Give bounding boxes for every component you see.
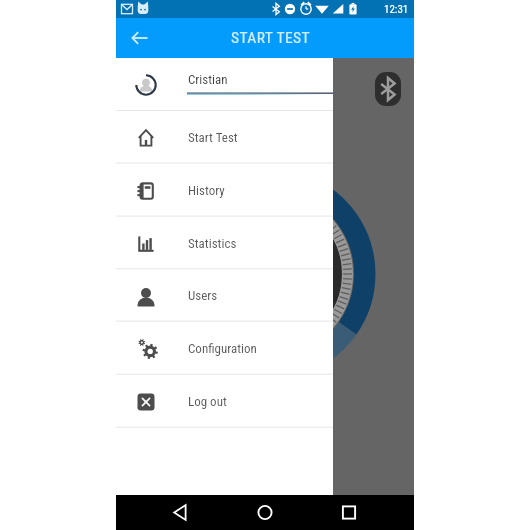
button[interactable]: Back bbox=[116, 495, 216, 530]
button[interactable]: History bbox=[116, 164, 333, 217]
staticText: History bbox=[188, 183, 225, 198]
button[interactable]: Bluetooth bbox=[375, 72, 401, 106]
button[interactable]: Users bbox=[116, 269, 333, 321]
staticText: Configuration bbox=[188, 341, 257, 356]
button[interactable]: Back bbox=[123, 21, 157, 55]
staticText: START TEST bbox=[231, 29, 310, 47]
staticText: Users bbox=[188, 288, 218, 303]
button[interactable]: Start Test bbox=[116, 111, 333, 164]
staticText: Cristian bbox=[188, 72, 228, 87]
button[interactable]: Statistics bbox=[116, 217, 333, 270]
button[interactable]: Recents bbox=[315, 495, 414, 530]
button[interactable]: Cristian bbox=[116, 58, 333, 111]
staticText: Statistics bbox=[188, 236, 237, 251]
button[interactable]: Home bbox=[216, 495, 315, 530]
button[interactable]: Configuration bbox=[116, 322, 333, 375]
staticText: Start Test bbox=[188, 130, 238, 145]
staticText: Log out bbox=[188, 394, 227, 409]
staticText: 12:31 bbox=[384, 3, 409, 16]
button[interactable]: Log out bbox=[116, 375, 333, 428]
